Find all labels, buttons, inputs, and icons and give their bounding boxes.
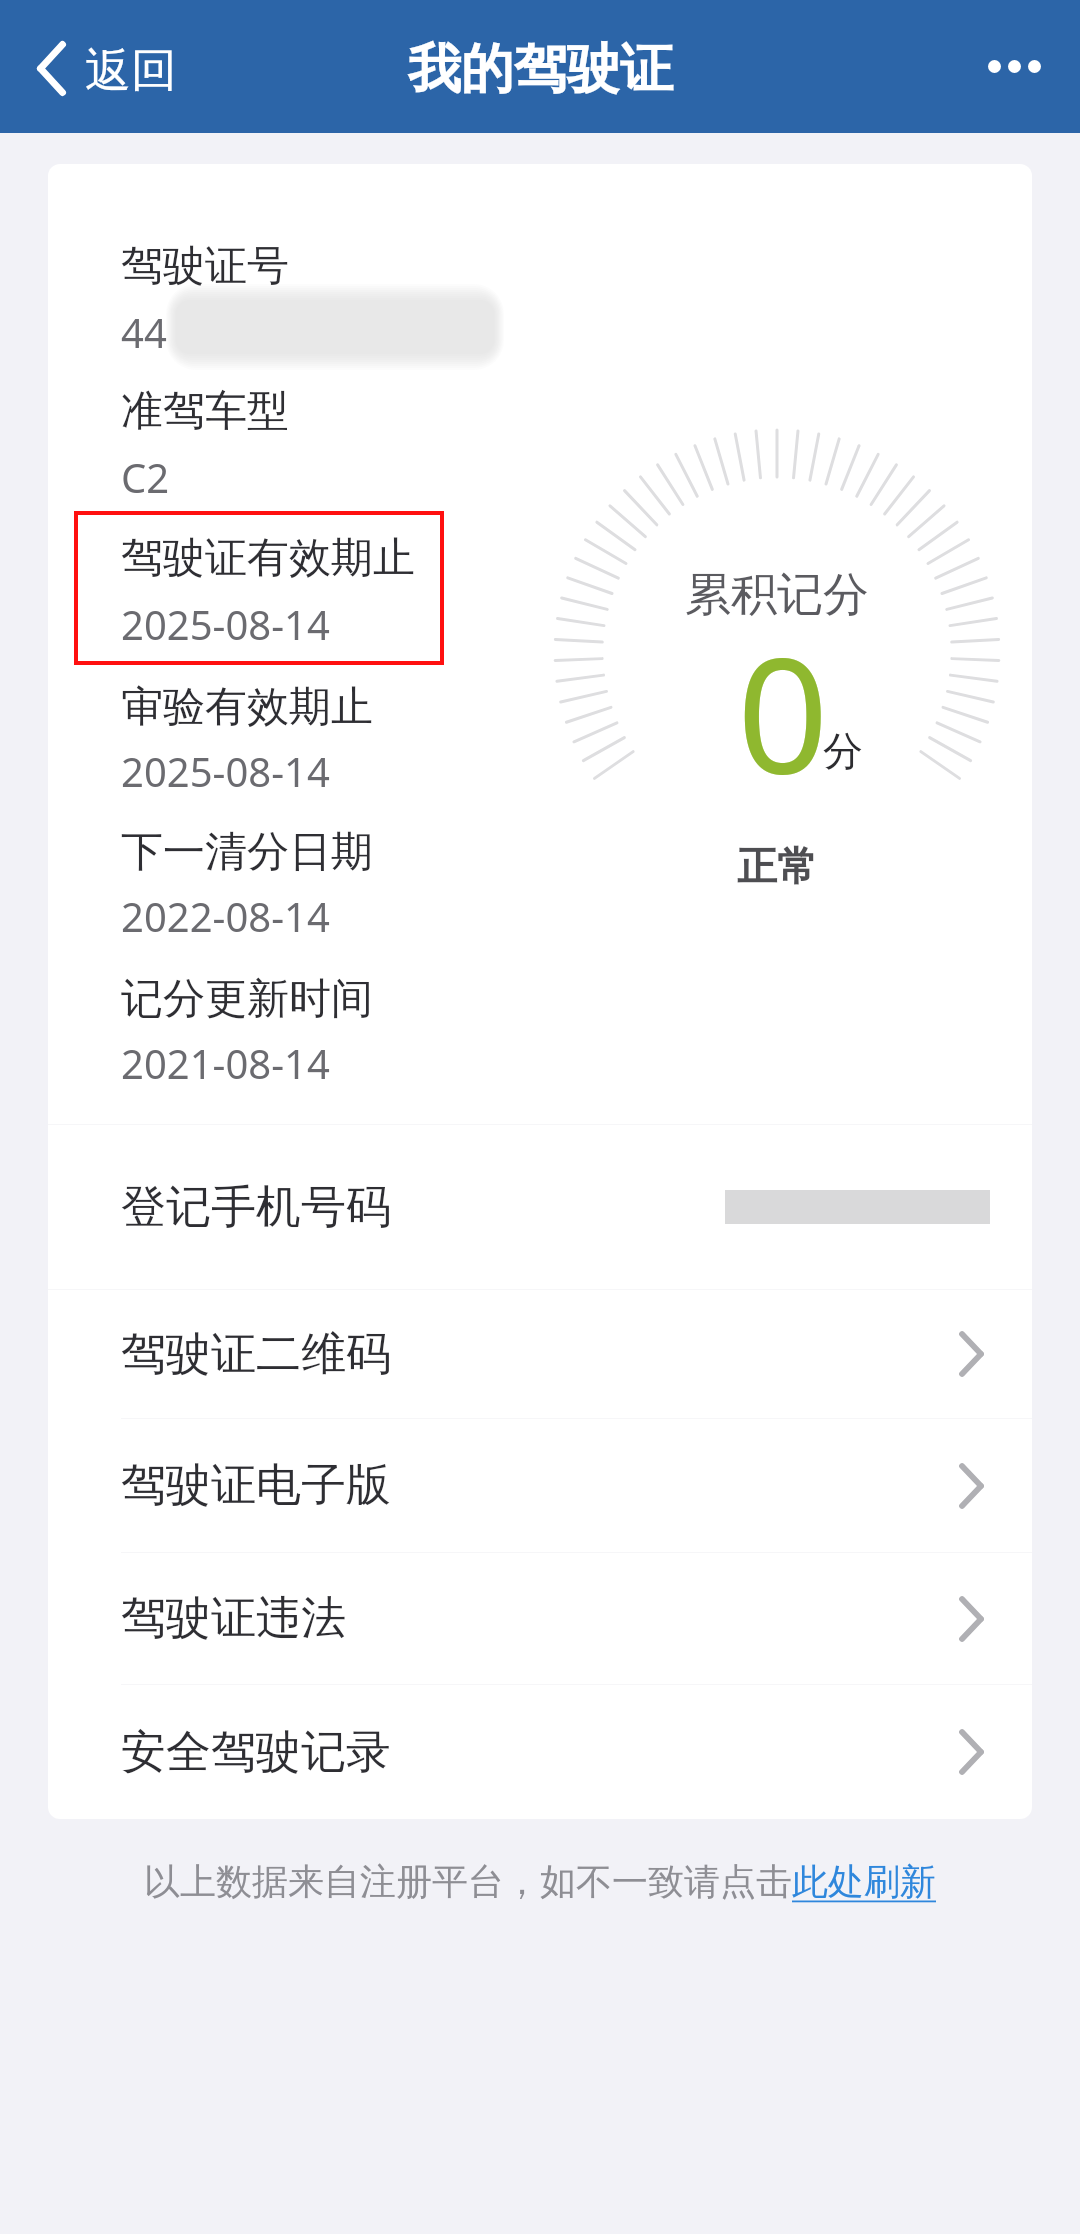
staticText: 返回	[85, 42, 177, 100]
button[interactable]: 返回	[0, 23, 197, 113]
staticText: 安全驾驶记录	[121, 1724, 391, 1781]
staticText: 驾驶证二维码	[121, 1326, 391, 1383]
staticText: 44	[121, 305, 167, 359]
staticText: 2022-08-14	[121, 889, 330, 943]
staticText: C2	[121, 450, 170, 504]
staticText: 正常	[737, 841, 817, 891]
button[interactable]: 驾驶证违法	[48, 1553, 1032, 1684]
button[interactable]: More options	[976, 40, 1053, 93]
staticText: 审验有效期止	[121, 681, 373, 734]
button[interactable]: 安全驾驶记录	[48, 1685, 1032, 1819]
staticText: 我的驾驶证	[408, 36, 673, 103]
staticText: 以上数据来自注册平台，如不一致请点击	[144, 1859, 792, 1904]
staticText: 登记手机号码	[121, 1179, 391, 1236]
staticText: 累积记分	[685, 566, 869, 624]
staticText: 分	[823, 726, 863, 776]
button[interactable]: 登记手机号码	[48, 1125, 1032, 1289]
staticText: 0	[737, 602, 829, 820]
staticText: 2021-08-14	[121, 1036, 330, 1090]
button[interactable]: 此处刷新	[792, 1859, 936, 1904]
staticText: 驾驶证号	[121, 240, 289, 293]
staticText: 记分更新时间	[121, 973, 373, 1026]
button[interactable]: 驾驶证电子版	[48, 1419, 1032, 1552]
staticText: 下一清分日期	[121, 826, 373, 879]
button[interactable]: 驾驶证二维码	[48, 1290, 1032, 1418]
staticText: 2025-08-14	[121, 597, 330, 651]
staticText: 准驾车型	[121, 385, 289, 438]
staticText: 驾驶证有效期止	[121, 532, 415, 585]
staticText: 2025-08-14	[121, 744, 330, 798]
staticText: 驾驶证违法	[121, 1590, 346, 1647]
staticText: 驾驶证电子版	[121, 1457, 391, 1514]
